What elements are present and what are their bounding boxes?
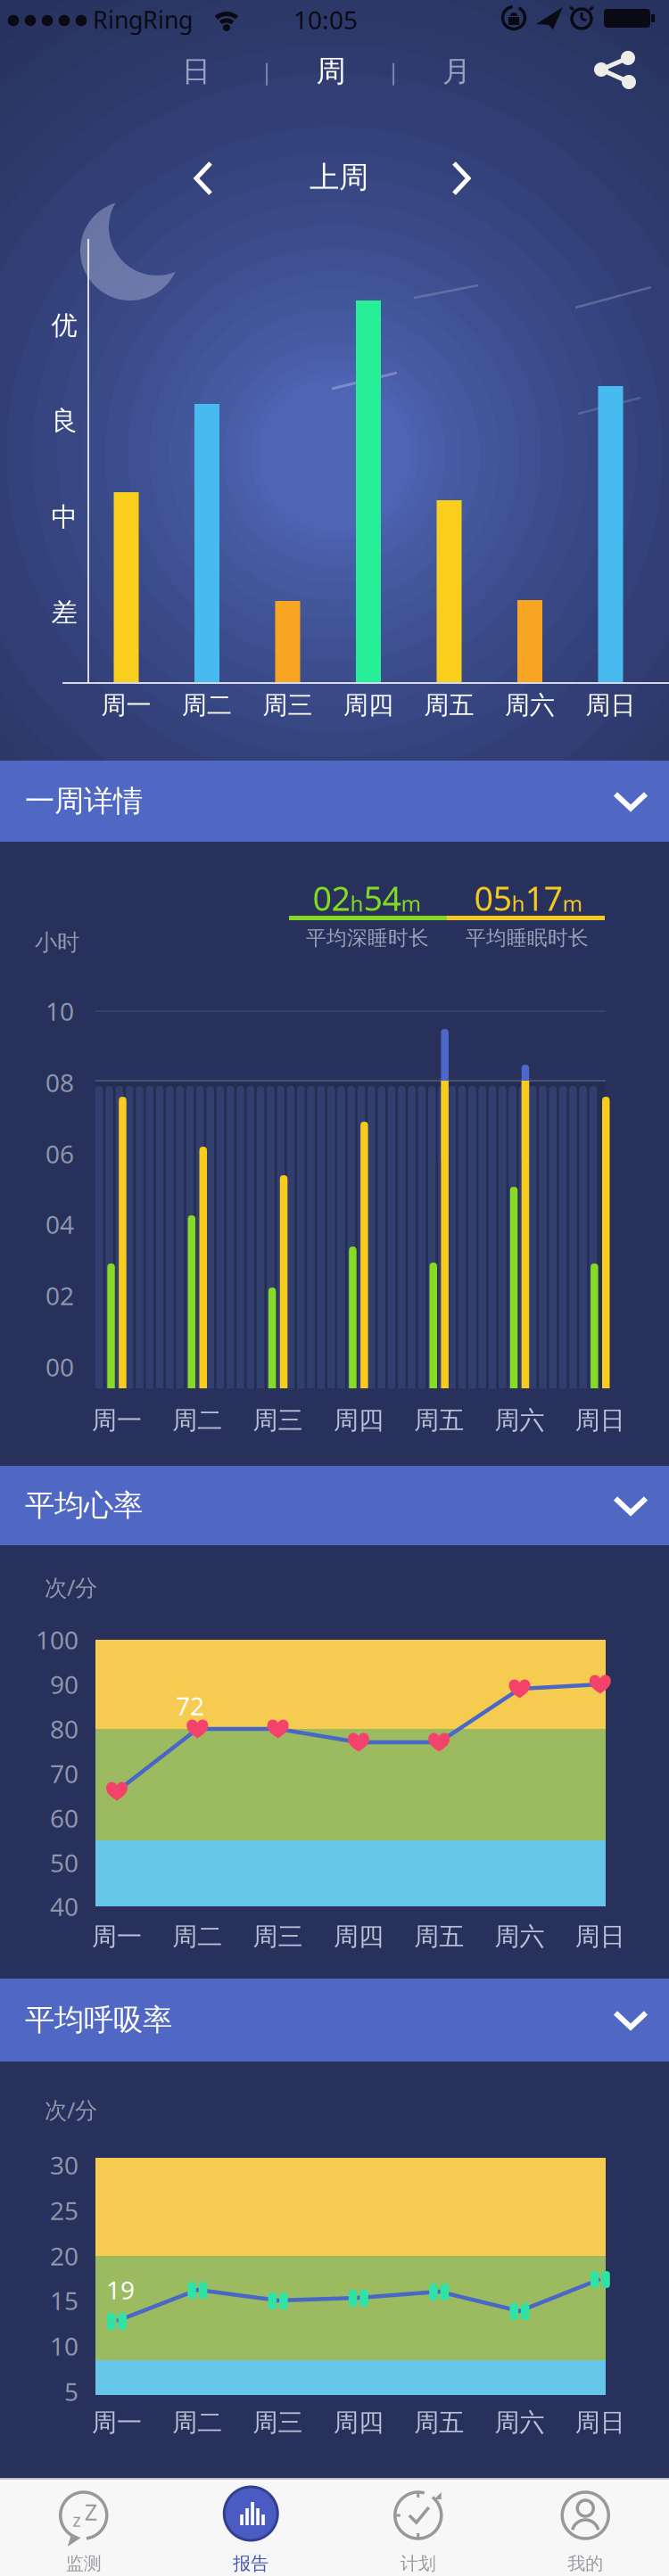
- staticText: 04: [45, 1208, 74, 1241]
- button[interactable]: [178, 156, 228, 201]
- staticText: 10: [50, 2329, 78, 2363]
- staticText: 周一: [92, 1921, 142, 1952]
- staticText: 90: [50, 1668, 78, 1701]
- staticText: |: [260, 56, 273, 86]
- staticText: 周六: [495, 1405, 545, 1436]
- staticText: 02: [313, 876, 350, 920]
- button[interactable]: 平均心率: [0, 1466, 669, 1545]
- staticText: 50: [50, 1846, 78, 1879]
- staticText: 中: [51, 501, 77, 533]
- staticText: 08: [45, 1066, 74, 1099]
- staticText: 周日: [575, 1405, 625, 1436]
- staticText: 25: [50, 2194, 78, 2227]
- staticText: 周日: [575, 2407, 625, 2438]
- staticText: 周二: [172, 1921, 222, 1952]
- staticText: 周五: [414, 2407, 464, 2438]
- staticText: 10: [45, 995, 74, 1028]
- staticText: 上周: [310, 159, 368, 196]
- staticText: 00: [45, 1350, 74, 1383]
- staticText: 周日: [586, 690, 636, 721]
- staticText: |: [387, 56, 400, 86]
- button[interactable]: 月: [421, 45, 492, 98]
- staticText: 周六: [495, 2407, 545, 2438]
- staticText: 05: [474, 876, 512, 920]
- staticText: 平均心率: [25, 1487, 143, 1524]
- staticText: 周六: [505, 690, 555, 721]
- staticText: 周三: [263, 690, 313, 721]
- staticText: 差: [51, 597, 77, 629]
- staticText: 计划: [400, 2553, 436, 2574]
- staticText: 06: [45, 1137, 74, 1170]
- button[interactable]: [436, 156, 486, 201]
- button[interactable]: 我的: [514, 2478, 657, 2576]
- staticText: 周二: [182, 690, 232, 721]
- staticText: 日: [182, 54, 211, 89]
- staticText: 月: [442, 54, 471, 89]
- staticText: 70: [50, 1757, 78, 1790]
- staticText: 周四: [334, 1921, 383, 1952]
- staticText: 小时: [35, 929, 79, 956]
- staticText: 监测: [66, 2553, 102, 2574]
- staticText: RingRing: [93, 4, 193, 35]
- staticText: 我的: [567, 2553, 603, 2574]
- staticText: 20: [50, 2239, 78, 2272]
- staticText: 周四: [334, 1405, 383, 1436]
- staticText: 次/分: [45, 2095, 97, 2125]
- staticText: 周五: [414, 1405, 464, 1436]
- staticText: 周四: [334, 2407, 383, 2438]
- staticText: 30: [50, 2148, 78, 2182]
- staticText: h: [350, 889, 363, 917]
- staticText: 周三: [253, 1405, 303, 1436]
- staticText: 周三: [253, 1921, 303, 1952]
- staticText: 周五: [414, 1921, 464, 1952]
- staticText: 报告: [233, 2553, 269, 2574]
- staticText: 5: [64, 2375, 78, 2408]
- staticText: 72: [176, 1689, 204, 1722]
- button[interactable]: z: [12, 2478, 155, 2576]
- staticText: 平均深睡时长: [306, 926, 429, 950]
- staticText: z: [72, 2508, 80, 2532]
- staticText: 良: [51, 405, 77, 437]
- button[interactable]: 日: [161, 45, 232, 98]
- staticText: 80: [50, 1712, 78, 1746]
- staticText: 54: [363, 876, 401, 920]
- staticText: 周二: [172, 1405, 222, 1436]
- staticText: 周五: [424, 690, 474, 721]
- staticText: 02: [45, 1279, 74, 1312]
- staticText: 60: [50, 1802, 78, 1835]
- staticText: 优: [51, 309, 77, 342]
- staticText: 周: [316, 53, 346, 90]
- staticText: Z: [85, 2497, 97, 2527]
- button[interactable]: 平均呼吸率: [0, 1979, 669, 2062]
- button[interactable]: 一周详情: [0, 761, 669, 842]
- staticText: 周四: [343, 690, 393, 721]
- staticText: h: [512, 889, 525, 917]
- staticText: 周一: [101, 690, 151, 721]
- button[interactable]: 报告: [179, 2478, 322, 2576]
- staticText: 次/分: [45, 1572, 97, 1602]
- staticText: 10:05: [293, 3, 358, 36]
- staticText: 周三: [253, 2407, 303, 2438]
- button[interactable]: 计划: [347, 2478, 490, 2576]
- staticText: 周二: [172, 2407, 222, 2438]
- staticText: 19: [106, 2273, 135, 2306]
- staticText: 周一: [92, 2407, 142, 2438]
- staticText: 15: [50, 2284, 78, 2317]
- staticText: 平均呼吸率: [25, 2002, 172, 2038]
- staticText: 一周详情: [25, 783, 143, 819]
- staticText: 周日: [575, 1921, 625, 1952]
- staticText: 100: [36, 1623, 78, 1656]
- button[interactable]: [589, 46, 642, 93]
- staticText: m: [401, 889, 421, 917]
- staticText: 17: [525, 876, 562, 920]
- staticText: 40: [50, 1890, 78, 1923]
- staticText: 周六: [495, 1921, 545, 1952]
- staticText: 平均睡眠时长: [466, 926, 589, 950]
- staticText: 周一: [92, 1405, 142, 1436]
- staticText: m: [562, 889, 582, 917]
- button[interactable]: 周: [295, 45, 367, 98]
